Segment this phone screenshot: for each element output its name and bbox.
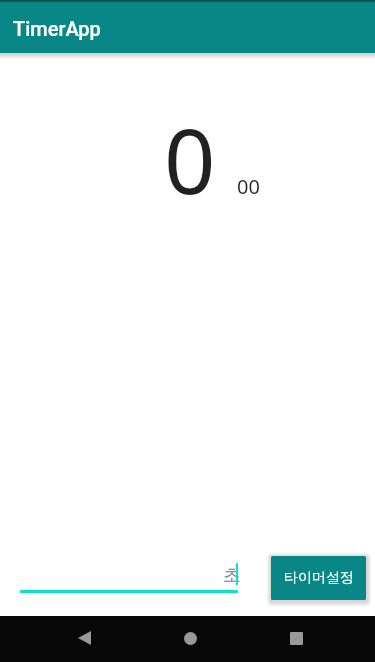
button[interactable]: Seconds input: [20, 556, 238, 600]
button[interactable]: Home: [167, 615, 213, 661]
staticText: 타이머설정: [284, 569, 354, 587]
button[interactable]: 타이머설정: [271, 556, 366, 600]
staticText: 초: [223, 564, 241, 587]
staticText: 00: [237, 173, 260, 200]
button[interactable]: Back: [61, 615, 107, 661]
staticText: TimerApp: [13, 17, 101, 40]
staticText: 0: [164, 98, 216, 221]
button[interactable]: Recent apps: [273, 615, 319, 661]
